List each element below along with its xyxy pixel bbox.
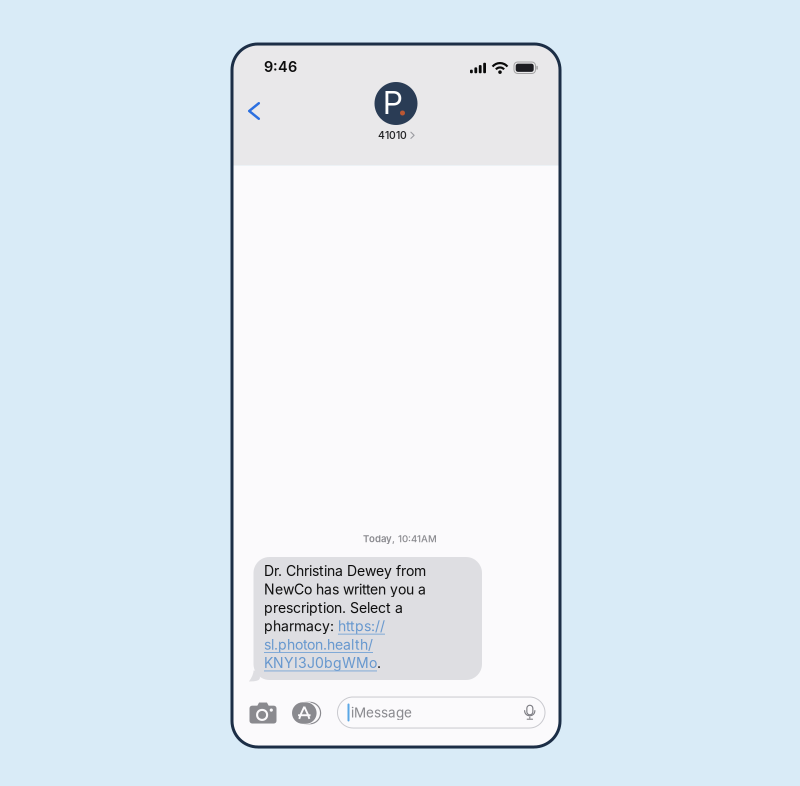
staticText: KNYI3J0bgWMo <box>264 654 377 671</box>
staticText: https:// <box>338 618 385 635</box>
staticText: sl.photon.health/ <box>264 636 373 653</box>
staticText: Today, 10:41AM <box>363 533 437 544</box>
staticText: 9:46 <box>264 58 297 75</box>
button[interactable]: Back <box>236 93 272 129</box>
staticText: 41010 <box>378 129 407 142</box>
staticText: iMessage <box>351 704 412 721</box>
button[interactable]: Apps <box>289 695 325 731</box>
staticText: pharmacy: <box>264 618 338 635</box>
staticText: prescription. Select a <box>264 599 403 616</box>
staticText: P <box>383 83 403 121</box>
button[interactable]: Camera <box>245 695 281 731</box>
button[interactable]: P <box>351 82 441 142</box>
staticText: . <box>377 654 381 671</box>
staticText: Dr. Christina Dewey from <box>264 562 426 579</box>
staticText: NewCo has written you a <box>264 581 426 598</box>
button[interactable]: iMessage <box>337 697 545 728</box>
